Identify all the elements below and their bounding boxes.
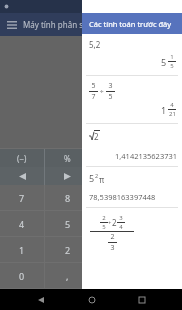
button[interactable]: 8 [45, 185, 90, 211]
button[interactable]: 5 [45, 211, 90, 237]
staticText: 3 [110, 243, 115, 253]
staticText: 2 [102, 214, 106, 222]
staticText: + [108, 219, 112, 227]
button[interactable]: 3 [91, 237, 136, 263]
button[interactable]: Fraction [91, 167, 136, 185]
button[interactable]: Các tính toán trước đây [82, 13, 182, 34]
staticText: 4 [170, 101, 174, 109]
button[interactable]: % [45, 149, 90, 167]
staticText: 2 [110, 232, 115, 242]
button[interactable]: 5,2 [82, 34, 182, 75]
button[interactable]: 2 [45, 237, 90, 263]
staticText: 78,5398163397448 [89, 192, 156, 202]
staticText: √ [111, 154, 117, 163]
staticText: 7 [19, 192, 25, 204]
staticText: % [64, 153, 71, 164]
button[interactable]: 2 [82, 208, 182, 268]
staticText: 5 [89, 172, 95, 184]
staticText: Máy tính phân số [23, 19, 88, 30]
staticText: 8 [65, 192, 71, 204]
staticText: 2 [94, 131, 99, 142]
staticText: , [66, 270, 69, 282]
button[interactable]: 5 [82, 167, 182, 207]
staticText: 5 [91, 81, 96, 91]
staticText: ÷ [98, 87, 106, 97]
staticText: 5 [102, 223, 106, 231]
staticText: 7 [91, 92, 96, 102]
staticText: 2 [95, 172, 99, 179]
staticText: π [99, 174, 105, 185]
staticText: (−) [17, 153, 27, 164]
staticText: 5 [170, 62, 174, 70]
staticText: 4 [119, 223, 123, 231]
staticText: Các tính toán trước đây [89, 19, 172, 29]
button[interactable]: 0 [0, 263, 44, 289]
staticText: 4 [19, 218, 25, 230]
staticText: 1 [19, 244, 25, 256]
button[interactable]: , [45, 263, 90, 289]
staticText: 5 [108, 92, 113, 102]
button[interactable]: 5 [82, 76, 182, 123]
staticText: 1 [170, 53, 174, 61]
button[interactable]: Back [30, 289, 51, 310]
button[interactable]: Recent apps [131, 289, 152, 310]
button[interactable]: 7 [0, 185, 44, 211]
button[interactable]: 4 [0, 211, 44, 237]
button[interactable]: Left [0, 167, 44, 185]
staticText: 1 [161, 104, 167, 116]
staticText: 3 [108, 81, 113, 91]
staticText: 3 [111, 244, 117, 256]
button[interactable]: 1 [0, 237, 44, 263]
staticText: 5,2 [89, 39, 101, 50]
staticText: 5 [161, 56, 167, 68]
button[interactable]: 6 [91, 211, 136, 237]
staticText: 6 [111, 218, 117, 230]
staticText: 3 [119, 214, 123, 222]
button[interactable]: √ [91, 149, 136, 167]
staticText: 2 [65, 244, 71, 256]
button[interactable]: 9 [91, 185, 136, 211]
staticText: 21 [169, 110, 176, 118]
button[interactable]: (−) [0, 149, 44, 167]
staticText: 2 [112, 217, 117, 228]
button[interactable]: 2 [82, 124, 182, 166]
button[interactable]: Right [45, 167, 90, 185]
staticText: 5 [65, 218, 71, 230]
button[interactable]: Open navigation drawer [0, 13, 23, 36]
staticText: 1,4142135623731 [115, 151, 178, 161]
staticText: 0 [19, 270, 25, 282]
staticText: 9 [111, 192, 117, 204]
button[interactable]: Home [81, 289, 102, 310]
